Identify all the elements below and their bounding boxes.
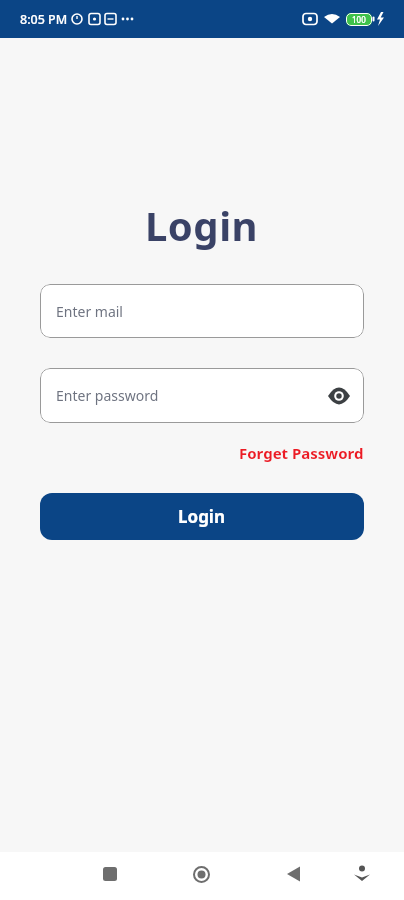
button[interactable] bbox=[328, 388, 350, 404]
staticText: Forget Password bbox=[239, 443, 364, 463]
button[interactable] bbox=[186, 859, 216, 889]
button[interactable]: Enter password bbox=[40, 368, 364, 423]
button[interactable]: Forget Password bbox=[239, 443, 364, 463]
staticText: Enter mail bbox=[56, 302, 123, 321]
staticText: Enter password bbox=[56, 386, 159, 405]
button[interactable] bbox=[95, 859, 125, 889]
button[interactable]: Enter mail bbox=[40, 284, 364, 338]
staticText: Login bbox=[178, 505, 226, 528]
staticText: 8:05 PM bbox=[20, 11, 68, 28]
button[interactable] bbox=[279, 859, 309, 889]
staticText: Login bbox=[145, 198, 259, 252]
button[interactable] bbox=[347, 859, 377, 889]
staticText: 100 bbox=[352, 14, 366, 25]
button[interactable]: Login bbox=[40, 493, 364, 540]
